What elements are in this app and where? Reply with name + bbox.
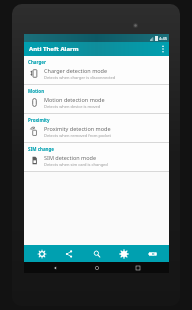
staticText: Detects when removed from pocket	[44, 133, 112, 138]
staticText: Proximity	[28, 117, 50, 123]
staticText: Motion	[28, 88, 45, 94]
button[interactable]: Exit	[142, 245, 162, 262]
button[interactable]: Home	[86, 262, 108, 273]
staticText: Anti Theft Alarm	[29, 45, 79, 53]
staticText: SIM detection mode	[44, 154, 97, 161]
button[interactable]: More options	[157, 42, 169, 56]
button[interactable]: Motion	[24, 85, 169, 114]
button[interactable]: SIM change	[24, 143, 169, 172]
staticText: SIM change	[28, 146, 55, 152]
button[interactable]: Proximity	[24, 114, 169, 143]
button[interactable]: Search	[87, 245, 107, 262]
staticText: Motion detection mode	[44, 96, 105, 103]
staticText: Detects when sim card is changed	[44, 162, 108, 167]
staticText: Detects when device is moved	[44, 104, 101, 109]
button[interactable]: Alarm settings	[32, 245, 52, 262]
button[interactable]: Settings	[114, 245, 134, 262]
staticText: 4:45	[159, 36, 167, 41]
button[interactable]: Recent apps	[127, 262, 149, 273]
button[interactable]: Back	[44, 262, 66, 273]
staticText: Charger	[28, 59, 47, 65]
staticText: Charger detection mode	[44, 67, 108, 74]
button[interactable]: Charger	[24, 56, 169, 85]
staticText: Proximity detection mode	[44, 125, 111, 132]
staticText: Detects when charger is disconnected	[44, 75, 116, 80]
button[interactable]: Share	[59, 245, 79, 262]
